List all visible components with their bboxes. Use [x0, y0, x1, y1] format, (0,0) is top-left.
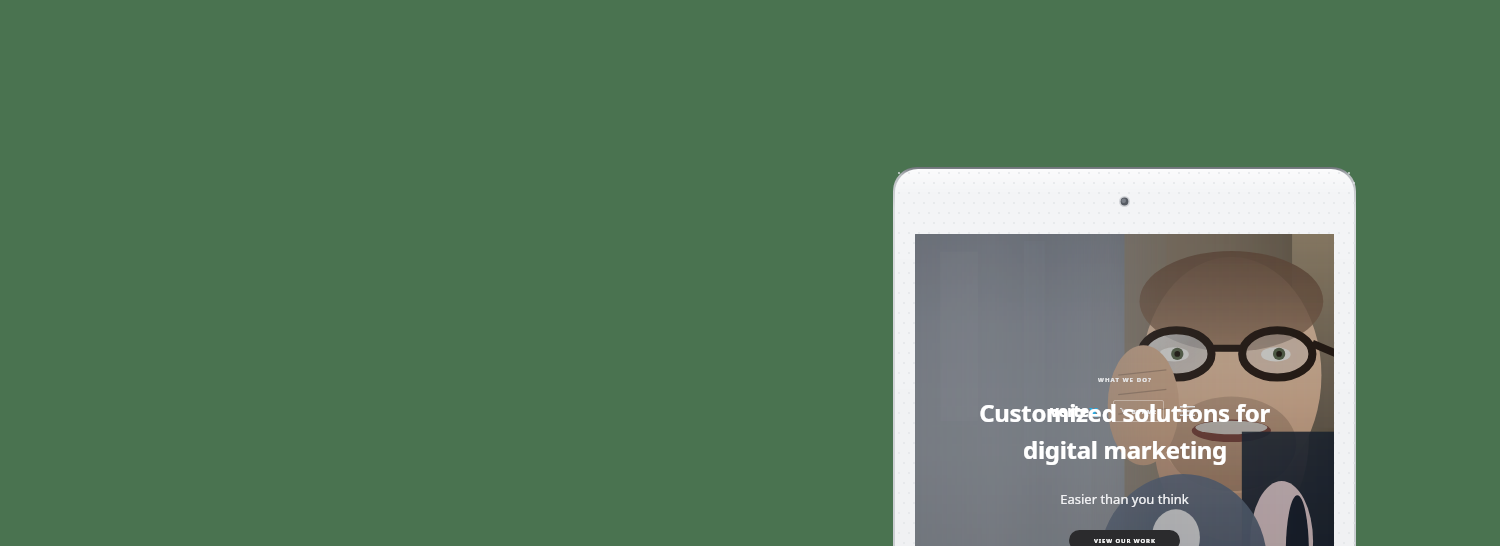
button[interactable]: VIEW OUR WORK	[1069, 530, 1180, 546]
button[interactable]: BUY ME	[1113, 400, 1164, 422]
staticText: Easier than you think	[1060, 490, 1189, 508]
staticText: verte	[1050, 401, 1089, 421]
staticText: x	[1089, 401, 1098, 421]
staticText: WHAT WE DO?	[1098, 376, 1152, 384]
button[interactable]: verte	[1050, 401, 1098, 421]
staticText: VIEW OUR WORK	[1094, 537, 1156, 545]
staticText: Customized solutions for	[979, 396, 1270, 429]
staticText: digital marketing	[1023, 433, 1227, 466]
button[interactable]: Menu	[1176, 400, 1198, 422]
staticText: BUY ME	[1132, 408, 1157, 415]
